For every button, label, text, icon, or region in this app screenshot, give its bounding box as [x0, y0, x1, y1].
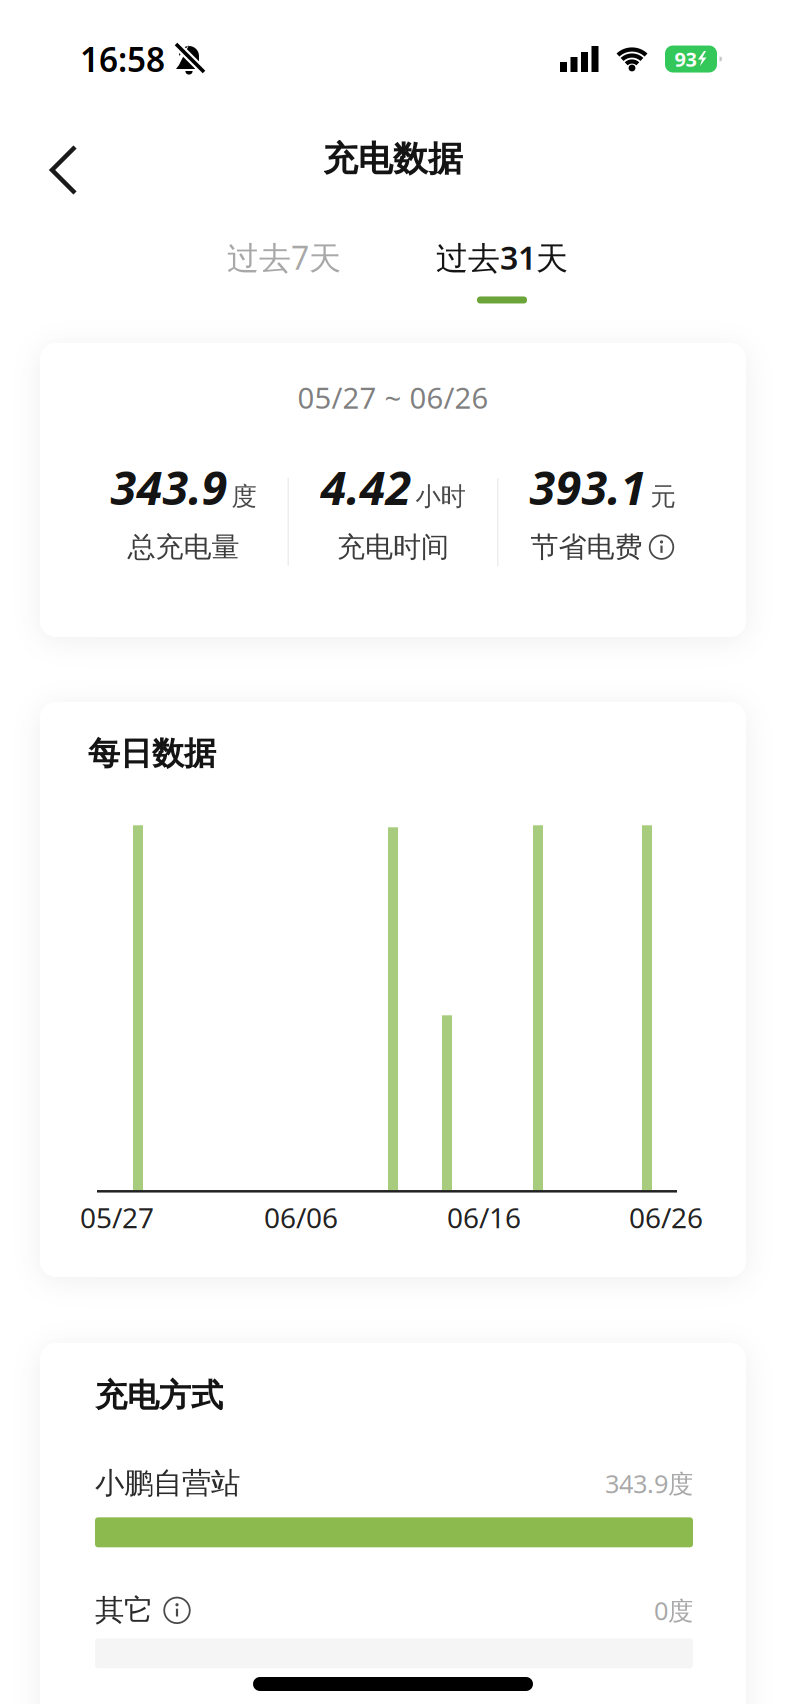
- staticText: 0度: [654, 1593, 693, 1627]
- staticText: 过去31天: [436, 236, 568, 278]
- staticText: 05/27: [80, 1199, 154, 1236]
- staticText: 充电数据: [323, 138, 463, 180]
- staticText: 过去7天: [227, 236, 341, 278]
- button[interactable]: 过去31天: [393, 236, 611, 278]
- staticText: 06/06: [264, 1199, 338, 1236]
- staticText: 16:58: [80, 37, 165, 81]
- staticText: 93: [674, 46, 696, 72]
- staticText: 元: [650, 481, 675, 512]
- button[interactable]: 过去7天: [175, 236, 393, 278]
- staticText: 小鹏自营站: [95, 1465, 240, 1501]
- staticText: 06/16: [447, 1199, 521, 1236]
- button[interactable]: [0, 123, 79, 195]
- staticText: 343.9度: [605, 1466, 693, 1500]
- staticText: 小时: [415, 481, 465, 512]
- staticText: 充电方式: [95, 1376, 223, 1415]
- staticText: 4.42: [320, 456, 411, 518]
- staticText: 总充电量: [127, 530, 239, 564]
- button[interactable]: [163, 1596, 191, 1624]
- staticText: 节省电费: [530, 530, 642, 564]
- staticText: 393.1: [529, 456, 646, 518]
- staticText: 充电时间: [337, 530, 449, 564]
- staticText: 06/26: [629, 1199, 703, 1236]
- button[interactable]: [648, 534, 674, 560]
- staticText: 每日数据: [88, 734, 216, 773]
- staticText: 05/27 ~ 06/26: [297, 378, 488, 417]
- staticText: 其它: [95, 1592, 153, 1628]
- staticText: 343.9: [110, 456, 227, 518]
- staticText: 度: [231, 481, 256, 512]
